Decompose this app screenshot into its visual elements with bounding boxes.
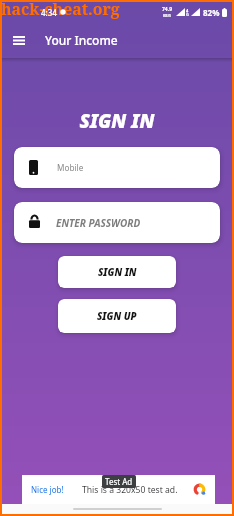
staticText: This is a 320x50 test ad. (82, 484, 178, 496)
staticText: KB/S (163, 13, 172, 18)
staticText: 74.9 (162, 6, 172, 13)
staticText: Mobile (57, 162, 84, 173)
staticText: 82% (203, 7, 220, 18)
button[interactable]: SIGN IN (58, 256, 176, 288)
staticText: 4G (186, 8, 191, 17)
staticText: 4:34 (41, 7, 57, 18)
staticText: Test Ad (105, 476, 133, 487)
staticText: SIGN UP (97, 310, 137, 323)
staticText: SIGN IN (2, 108, 232, 134)
button[interactable]: Nice job! (22, 475, 215, 504)
button[interactable]: ENTER PASSWORD (14, 202, 220, 243)
staticText: SIGN IN (98, 266, 137, 279)
staticText: ENTER PASSWORD (56, 216, 141, 230)
button[interactable]: Open navigation menu (11, 25, 27, 55)
staticText: Nice job! (31, 484, 64, 495)
staticText: hack-cheat.org (1, 0, 120, 20)
staticText: Your Income (45, 32, 118, 48)
button[interactable]: Mobile (14, 147, 220, 188)
button[interactable]: SIGN UP (58, 299, 176, 333)
